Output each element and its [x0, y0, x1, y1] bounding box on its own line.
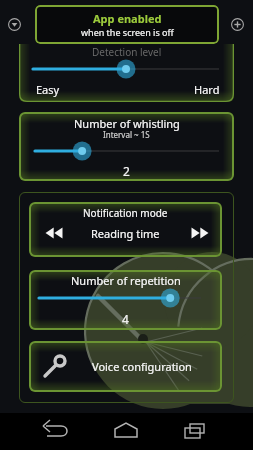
button[interactable]: Recents	[183, 421, 209, 441]
staticText: Notification mode	[83, 206, 168, 220]
staticText: 2	[123, 163, 130, 179]
button[interactable]: Home	[113, 421, 139, 441]
staticText: Voice configuration	[92, 359, 192, 374]
staticText: App enabled	[93, 11, 162, 26]
staticText: when the screen is off	[81, 26, 174, 38]
button[interactable]: Number of whistling	[19, 112, 234, 181]
staticText: Hard	[194, 82, 220, 97]
button[interactable]: Number of repetition	[29, 270, 222, 330]
staticText: Reading time	[91, 226, 160, 241]
button[interactable]: Notification mode	[29, 202, 222, 257]
button[interactable]: Collapse	[8, 18, 21, 31]
button[interactable]: Detection level	[19, 44, 234, 102]
staticText: Interval ~ 1S	[103, 129, 150, 140]
staticText: Number of repetition	[71, 273, 181, 288]
button[interactable]: Previous	[42, 226, 66, 240]
staticText: Detection level	[92, 45, 162, 59]
staticText: Easy	[36, 82, 60, 97]
staticText: Number of whistling	[74, 116, 180, 131]
staticText: 4	[122, 311, 129, 327]
button[interactable]: App enabled	[35, 5, 219, 44]
button[interactable]: Voice configuration	[29, 341, 222, 392]
button[interactable]: Back	[42, 421, 68, 441]
button[interactable]: Add	[231, 18, 244, 31]
button[interactable]: Next	[188, 226, 212, 240]
